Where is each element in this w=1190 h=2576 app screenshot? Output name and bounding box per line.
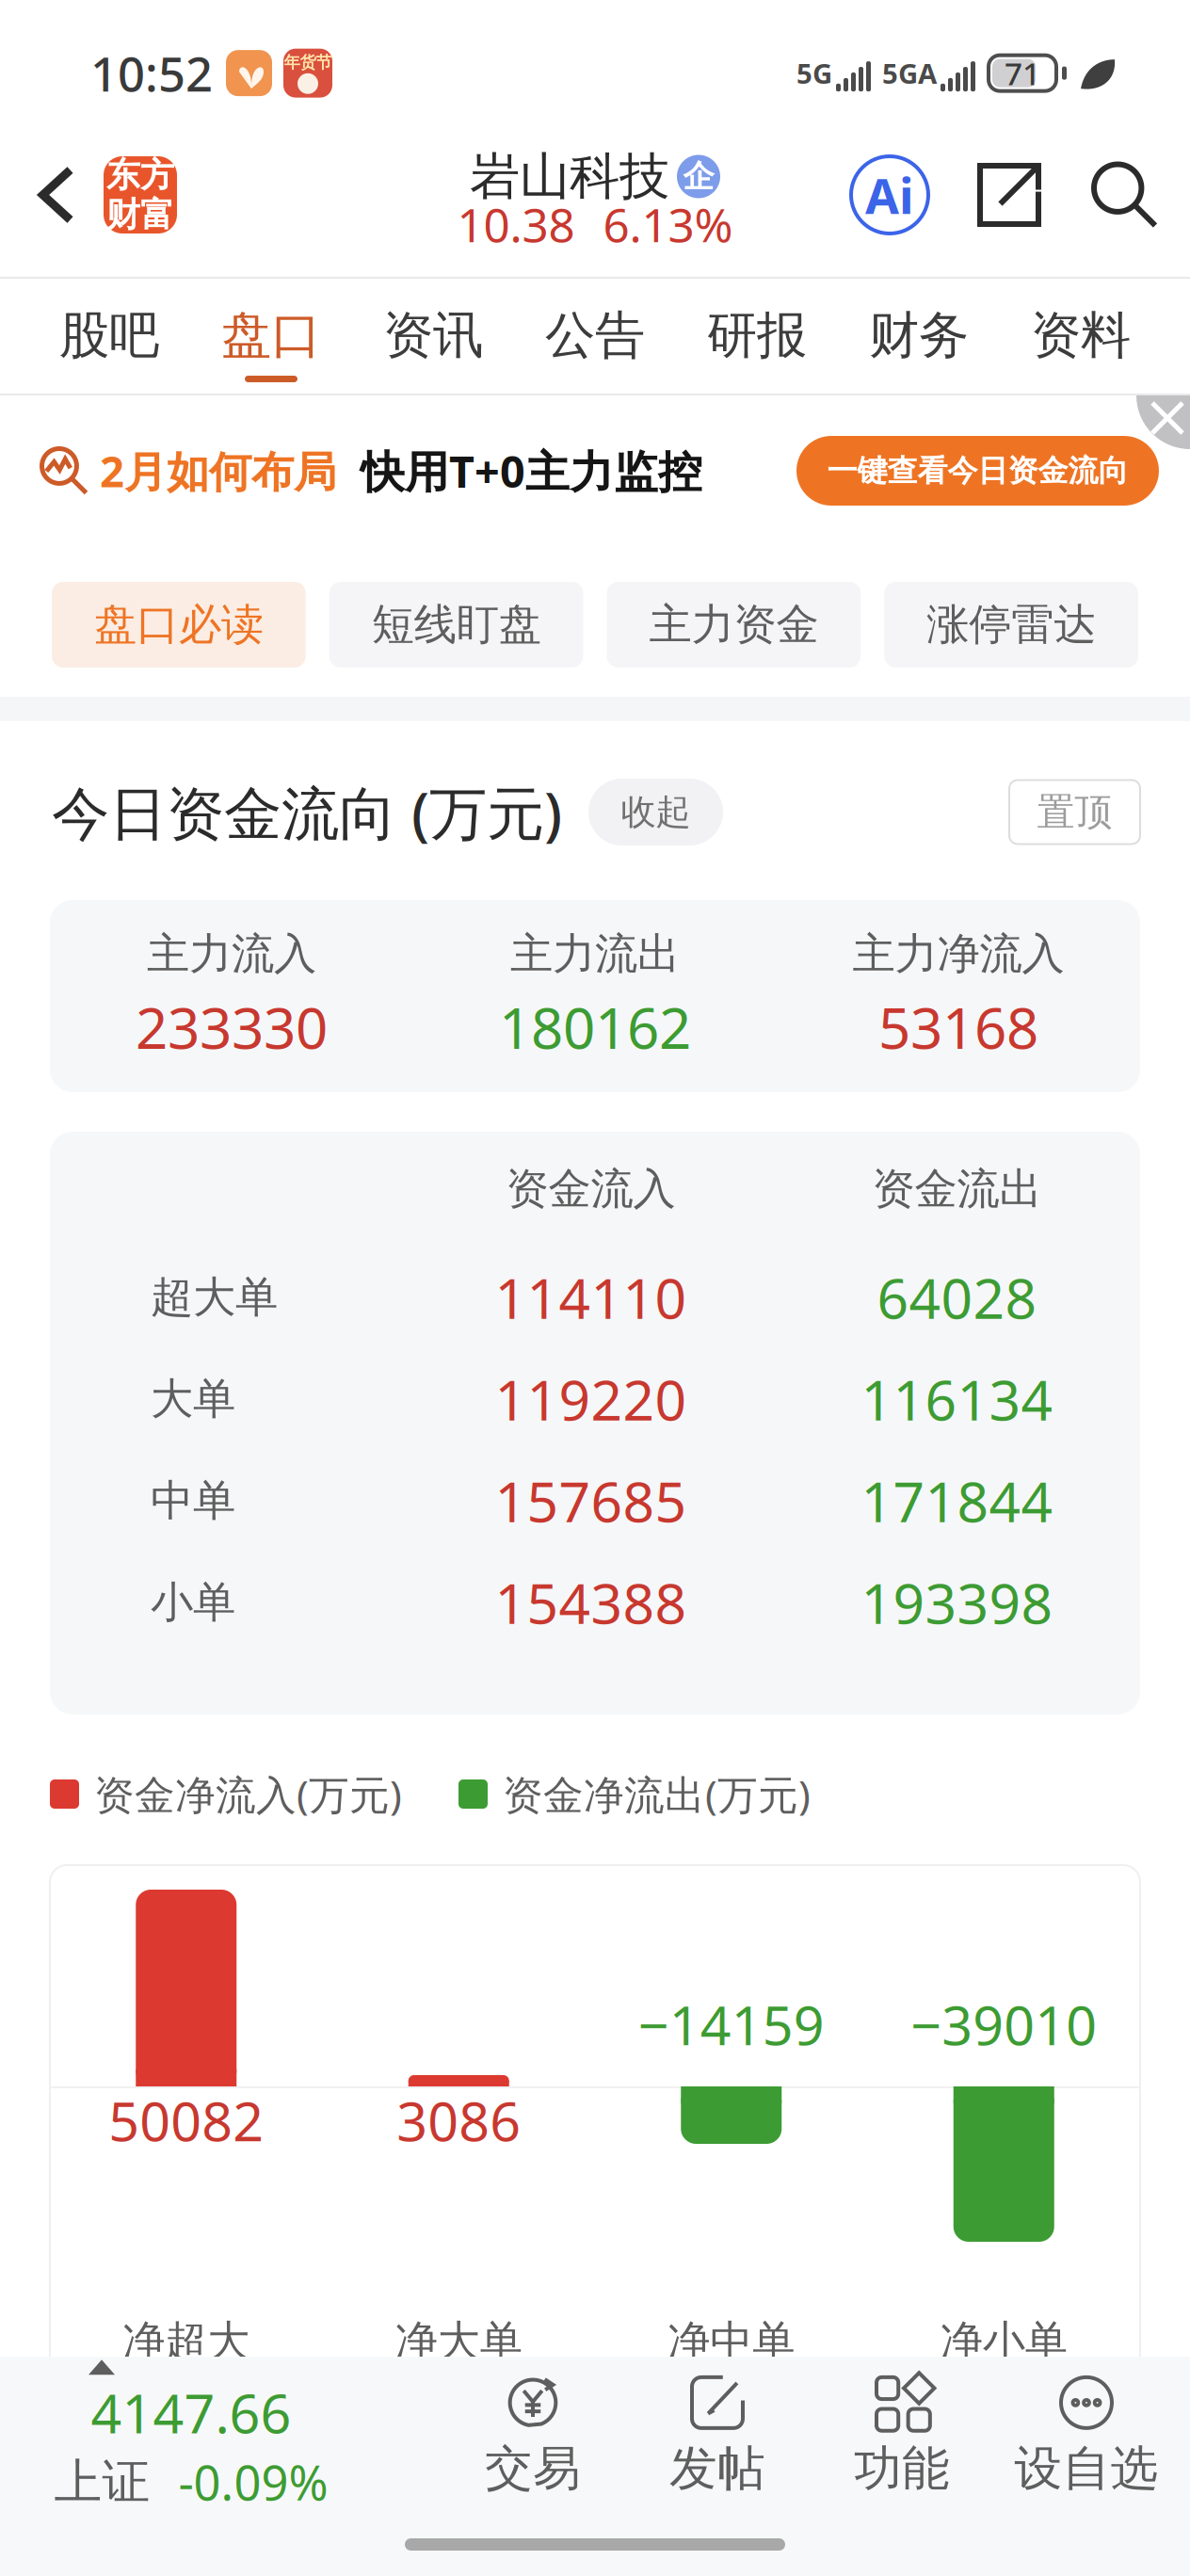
button[interactable]: 功能 — [810, 2361, 994, 2512]
staticText: 交易 — [485, 2439, 581, 2498]
staticText: 171844 — [861, 1464, 1053, 1537]
staticText: 3086 — [397, 2085, 521, 2156]
staticText: 154388 — [495, 1566, 687, 1639]
staticText: -0.09% — [178, 2450, 328, 2514]
staticText: 64028 — [877, 1261, 1037, 1334]
button[interactable]: 一键查看今日资金流向 — [796, 436, 1159, 506]
staticText: 193398 — [861, 1566, 1053, 1639]
staticText: 主力资金 — [649, 599, 819, 651]
staticText: 资金流出 — [872, 1163, 1042, 1215]
staticText: 净中单 — [668, 2315, 795, 2368]
button[interactable]: 资讯 — [352, 279, 514, 394]
button[interactable]: AI 助手 — [851, 113, 953, 277]
staticText: 中单 — [151, 1475, 235, 1527]
staticText: 盘口必读 — [94, 599, 264, 651]
staticText: 资金流入 — [506, 1163, 675, 1215]
staticText: 小单 — [151, 1576, 235, 1629]
staticText: 157685 — [495, 1464, 687, 1537]
staticText: 114110 — [495, 1261, 687, 1334]
staticText: Ai — [865, 162, 914, 227]
staticText: 10.38 — [457, 193, 575, 255]
staticText: 财务 — [869, 305, 969, 366]
button[interactable]: 搜索 — [1066, 113, 1183, 277]
staticText: 超大单 — [151, 1271, 278, 1324]
staticText: 财富 — [106, 194, 174, 236]
button[interactable]: 设自选 — [994, 2361, 1179, 2512]
staticText: 180162 — [499, 990, 691, 1065]
staticText: 主力流入 — [147, 928, 316, 980]
button[interactable]: 公告 — [514, 279, 676, 394]
staticText: 5GA — [882, 55, 937, 92]
button[interactable]: 发帖 — [625, 2361, 810, 2512]
staticText: 6.13% — [603, 193, 733, 255]
staticText: 4147.66 — [91, 2377, 291, 2448]
staticText: 主力净流入 — [852, 928, 1064, 980]
button[interactable]: 盘口必读 — [52, 582, 306, 668]
button[interactable]: 盘口 — [190, 279, 352, 394]
staticText: 企 — [683, 157, 714, 196]
staticText: 上证 — [54, 2453, 150, 2511]
staticText: 116134 — [861, 1362, 1053, 1436]
staticText: 10:52 — [90, 41, 213, 105]
staticText: −14159 — [638, 1988, 825, 2060]
staticText: 资料 — [1031, 305, 1131, 366]
staticText: 东方 — [106, 154, 174, 196]
staticText: 快用T+0主力监控 — [361, 442, 702, 500]
staticText: 研报 — [707, 305, 807, 366]
staticText: 置顶 — [1037, 789, 1112, 835]
staticText: 资金净流出(万元) — [503, 1767, 811, 1821]
staticText: 股吧 — [59, 305, 159, 366]
staticText: 设自选 — [1014, 2439, 1158, 2498]
staticText: 大单 — [151, 1373, 235, 1425]
button[interactable]: 上证指数 — [0, 2360, 346, 2514]
staticText: 5G — [796, 55, 832, 92]
staticText: 今日资金流向 (万元) — [52, 774, 562, 850]
button[interactable]: 东方财富 — [104, 113, 177, 277]
staticText: 年货节 — [284, 52, 332, 72]
staticText: 主力流出 — [510, 928, 680, 980]
button[interactable]: 股吧 — [28, 279, 190, 394]
button[interactable]: 财务 — [838, 279, 1000, 394]
staticText: 资金净流入(万元) — [94, 1767, 402, 1821]
staticText: 功能 — [854, 2439, 950, 2498]
staticText: 71 — [1005, 52, 1040, 94]
staticText: 119220 — [495, 1362, 687, 1436]
staticText: 一键查看今日资金流向 — [827, 452, 1128, 489]
staticText: 净小单 — [940, 2315, 1067, 2368]
staticText: 53168 — [878, 990, 1038, 1065]
staticText: 公告 — [545, 305, 645, 366]
staticText: −39010 — [911, 1988, 1097, 2060]
staticText: 岩山科技 — [470, 146, 669, 207]
staticText: 盘口 — [221, 305, 321, 366]
button[interactable]: 研报 — [676, 279, 838, 394]
button[interactable]: 交易 — [441, 2361, 625, 2512]
staticText: 50082 — [108, 2085, 264, 2156]
button[interactable]: 涨停雷达 — [884, 582, 1138, 668]
staticText: 净大单 — [395, 2315, 522, 2368]
button[interactable]: 收起 — [588, 779, 723, 845]
staticText: 233330 — [136, 990, 328, 1065]
staticText: 资讯 — [383, 305, 483, 366]
button[interactable]: 主力资金 — [607, 582, 861, 668]
staticText: 2月如何布局 — [100, 442, 336, 499]
button[interactable]: 置顶 — [1009, 780, 1140, 844]
button[interactable]: 短线盯盘 — [329, 582, 583, 668]
staticText: 发帖 — [669, 2439, 765, 2498]
staticText: 短线盯盘 — [371, 599, 541, 651]
staticText: 涨停雷达 — [926, 599, 1096, 651]
staticText: 净超大 — [123, 2315, 250, 2368]
button[interactable]: 关闭 — [1135, 395, 1190, 450]
staticText: 收起 — [621, 791, 691, 834]
button[interactable]: 资料 — [1000, 279, 1162, 394]
button[interactable]: 分享 — [953, 113, 1066, 277]
button[interactable]: 返回 — [9, 113, 104, 277]
